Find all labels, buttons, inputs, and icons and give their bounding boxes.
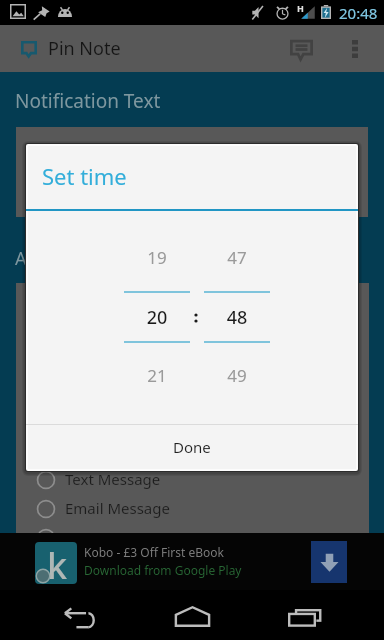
- staticText: H: [297, 2, 304, 14]
- button[interactable]: Back: [55, 594, 103, 640]
- button[interactable]: Download: [311, 541, 347, 583]
- staticText: Notification Text: [15, 88, 161, 114]
- button[interactable]: k: [0, 533, 384, 590]
- staticText: 20: [124, 305, 190, 330]
- staticText: Download from Google Play: [84, 562, 242, 578]
- button[interactable]: [16, 523, 369, 552]
- button[interactable]: Email Message: [16, 494, 369, 523]
- staticText: Pin Note: [48, 36, 121, 61]
- button[interactable]: More options: [333, 27, 377, 71]
- staticText: 48: [204, 305, 270, 330]
- staticText: Kobo - £3 Off First eBook: [84, 544, 225, 560]
- staticText: Set time: [42, 161, 127, 191]
- staticText: 21: [124, 364, 190, 387]
- staticText: 19: [124, 246, 190, 269]
- button[interactable]: Text Message: [16, 465, 369, 494]
- staticText: Email Message: [65, 498, 170, 518]
- button[interactable]: Messages: [279, 27, 323, 71]
- staticText: 49: [204, 364, 270, 387]
- button[interactable]: Done: [26, 427, 358, 471]
- staticText: 20:48: [339, 3, 378, 23]
- staticText: Done: [173, 437, 211, 457]
- button[interactable]: Home: [168, 592, 216, 640]
- staticText: 47: [204, 246, 270, 269]
- staticText: Text Message: [65, 469, 161, 489]
- button[interactable]: Pin Note: [0, 25, 384, 72]
- staticText: Alarm: [15, 246, 66, 271]
- button[interactable]: Recent apps: [281, 594, 329, 640]
- staticText: k: [47, 542, 68, 583]
